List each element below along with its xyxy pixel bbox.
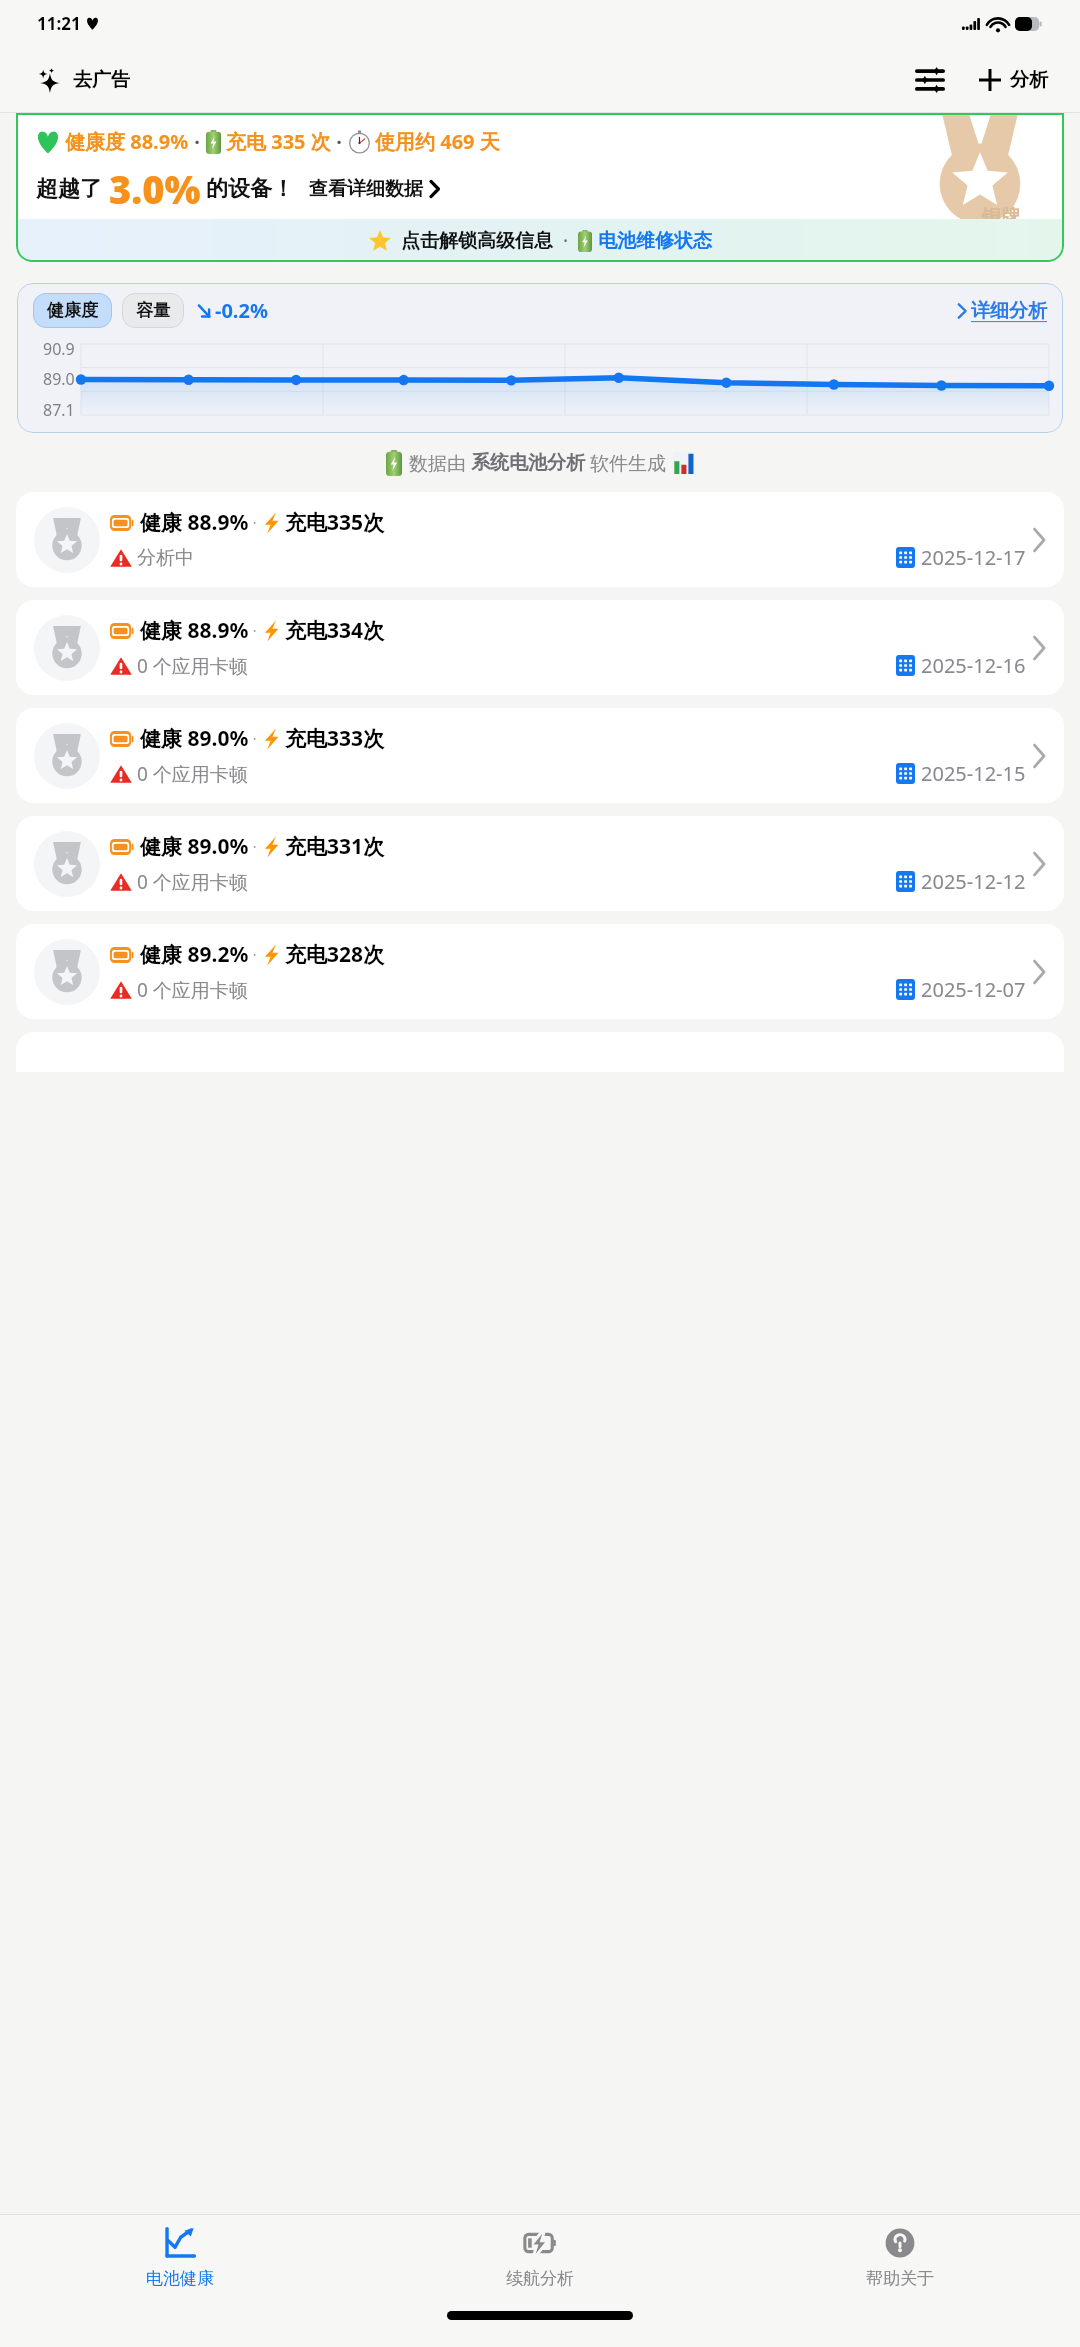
staticText: 健康 88.9%	[140, 508, 249, 537]
staticText: 2025-12-16	[921, 652, 1026, 679]
button[interactable]: 点击解锁高级信息	[16, 219, 1064, 262]
button[interactable]: 续航分析	[360, 2215, 720, 2305]
button[interactable]: 详细分析	[955, 297, 1049, 325]
staticText: 使用约 469 天	[375, 128, 500, 155]
staticText: 90.9	[43, 338, 75, 360]
staticText: ·	[249, 837, 261, 856]
staticText: 充电333次	[285, 724, 385, 753]
staticText: 超越了	[36, 175, 102, 203]
staticText: 11:21	[37, 12, 81, 35]
staticText: 数据由	[409, 450, 471, 476]
button[interactable]: 电池健康	[0, 2215, 360, 2305]
button[interactable]: 健康度	[33, 293, 112, 328]
button[interactable]: 健康 89.2%	[16, 924, 1064, 1019]
staticText: 的设备！	[206, 175, 294, 203]
staticText: 健康度	[47, 300, 98, 321]
staticText: 健康 88.9%	[140, 616, 249, 645]
staticText: 电池维修状态	[598, 229, 712, 253]
button[interactable]: 健康 89.0%	[16, 708, 1064, 803]
staticText: 充电335次	[285, 508, 385, 537]
staticText: 分析中	[137, 546, 194, 570]
staticText: 89.0	[43, 368, 75, 390]
staticText: ·	[553, 228, 578, 254]
staticText: 充电331次	[285, 832, 385, 861]
staticText: ·	[189, 128, 206, 155]
staticText: 0 个应用卡顿	[137, 869, 248, 895]
staticText: 2025-12-07	[921, 976, 1026, 1003]
staticText: ·	[249, 729, 261, 748]
staticText: 系统电池分析	[471, 451, 585, 475]
staticText: 3.0%	[109, 163, 201, 215]
staticText: 软件生成	[585, 450, 666, 476]
staticText: 健康 89.0%	[140, 832, 249, 861]
button[interactable]: 健康 88.9%	[16, 600, 1064, 695]
staticText: 充电334次	[285, 616, 385, 645]
button[interactable]: Filter settings	[907, 60, 953, 100]
staticText: 续航分析	[506, 2268, 574, 2289]
staticText: -0.2%	[215, 297, 268, 324]
button[interactable]: 帮助关于	[720, 2215, 1080, 2305]
staticText: ·	[249, 513, 261, 532]
button[interactable]: 健康 88.9%	[16, 492, 1064, 587]
button[interactable]: 分析	[975, 64, 1052, 96]
staticText: 充电328次	[285, 940, 385, 969]
staticText: 2025-12-15	[921, 760, 1026, 787]
staticText: ·	[331, 128, 348, 155]
button[interactable]: 健康 89.0%	[16, 816, 1064, 911]
staticText: 2025-12-12	[921, 868, 1026, 895]
staticText: 健康 89.0%	[140, 724, 249, 753]
staticText: 87.1	[43, 399, 75, 421]
staticText: ·	[249, 945, 261, 964]
staticText: 点击解锁高级信息	[401, 229, 553, 253]
staticText: 容量	[136, 300, 170, 321]
button[interactable]: 去广告	[34, 63, 134, 97]
staticText: 查看详细数据	[309, 177, 423, 201]
button[interactable]: 查看详细数据	[306, 174, 443, 204]
staticText: 健康度 88.9%	[65, 128, 189, 155]
staticText: 详细分析	[971, 299, 1047, 323]
button[interactable]: 容量	[122, 293, 184, 328]
staticText: 分析	[1010, 68, 1048, 92]
staticText: 充电 335 次	[226, 128, 331, 155]
staticText: 健康 89.2%	[140, 940, 249, 969]
staticText: 电池健康	[146, 2268, 214, 2289]
staticText: 0 个应用卡顿	[137, 977, 248, 1003]
staticText: 帮助关于	[866, 2268, 934, 2289]
staticText: 去广告	[73, 68, 130, 92]
staticText: 0 个应用卡顿	[137, 653, 248, 679]
staticText: 0 个应用卡顿	[137, 761, 248, 787]
staticText: 铜牌	[982, 205, 1020, 229]
staticText: 2025-12-17	[921, 544, 1026, 571]
staticText: ·	[249, 621, 261, 640]
